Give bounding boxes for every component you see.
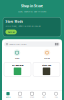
button[interactable]: Scan bbox=[26, 92, 38, 98]
button[interactable]: Scan bbox=[2, 49, 32, 60]
staticText: Store Pay bbox=[42, 64, 51, 66]
staticText: Search this store bbox=[9, 43, 26, 46]
staticText: Scan bbox=[30, 96, 34, 98]
staticText: Store Mode bbox=[5, 20, 23, 24]
button[interactable]: Aisles bbox=[32, 49, 62, 60]
staticText: Cart bbox=[42, 96, 46, 98]
staticText: You bbox=[54, 96, 57, 98]
button[interactable]: You bbox=[50, 92, 62, 98]
button[interactable]: Home bbox=[2, 92, 14, 98]
staticText: Scan, search & pay in store bbox=[18, 10, 46, 13]
button[interactable]: Store Mode bbox=[0, 17, 64, 37]
button[interactable]: Search this store bbox=[2, 39, 62, 47]
staticText: My Rewards bbox=[11, 64, 23, 66]
button[interactable]: My Rewards bbox=[4, 62, 31, 76]
staticText: Shop in Store bbox=[21, 3, 43, 8]
staticText: Aisle maps, offers & scan-as-you-go bbox=[5, 25, 40, 27]
staticText: Aisles bbox=[44, 57, 50, 60]
staticText: Scan bbox=[15, 57, 19, 60]
button[interactable]: Shop bbox=[14, 92, 26, 98]
staticText: Home bbox=[5, 96, 10, 98]
button[interactable]: Cart bbox=[38, 92, 50, 98]
staticText: Turn on bbox=[8, 30, 15, 33]
button[interactable]: Store Pay bbox=[33, 62, 60, 76]
staticText: Shop bbox=[18, 96, 22, 98]
